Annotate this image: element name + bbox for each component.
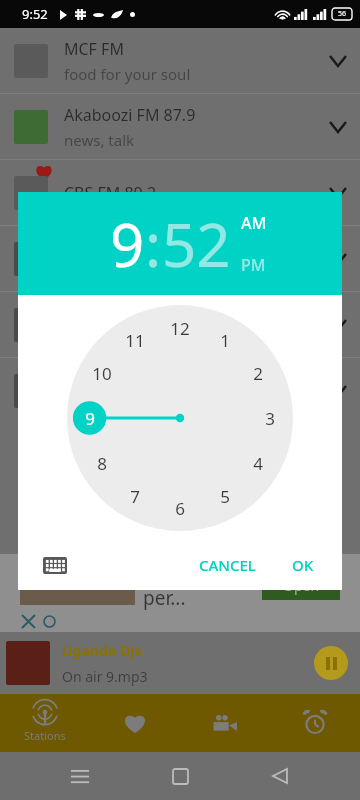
staticText: 3 [265,407,275,430]
staticText: Stations [24,728,66,743]
staticText: On air 9.mp3 [62,667,148,686]
staticText: 5 [220,485,230,508]
button[interactable]: Favorites [90,694,180,752]
button[interactable]: Home [160,756,200,796]
button[interactable]: 8 [87,448,117,478]
staticText: 9 [110,203,145,285]
button[interactable]: Back [260,756,300,796]
button[interactable]: 4 [243,448,273,478]
staticText: 7 [130,485,140,508]
staticText: CANCEL [199,555,256,575]
staticText: Akaboozi FM 87.9 [64,104,196,126]
button[interactable]: 11 [120,325,150,355]
button[interactable] [0,292,360,357]
button[interactable] [0,226,360,291]
staticText: 8 [97,452,107,475]
staticText: 9 [85,407,95,430]
button[interactable]: Recents [60,756,100,796]
button[interactable]: 1 [210,325,240,355]
button[interactable]: Switch to text input [40,553,70,577]
staticText: per... [143,585,186,611]
button[interactable]: CANCEL [189,547,266,583]
button[interactable]: 2 [243,358,273,388]
button[interactable]: 9 [75,403,105,433]
button[interactable]: Video [180,694,270,752]
staticText: food for your soul [64,64,191,84]
staticText: Earn $6.6 [143,559,227,585]
staticText: 12 [170,317,190,340]
button[interactable]: 10 [87,358,117,388]
staticText: 6 [175,497,185,520]
button[interactable]: MCF FM [0,28,360,93]
button[interactable]: 12 [165,313,195,343]
button[interactable]: Stations [0,694,90,752]
button[interactable]: Alarm [270,694,360,752]
button[interactable] [0,358,360,423]
staticText: PM [241,254,266,276]
button[interactable]: 9 [110,203,145,285]
staticText: 1 [220,329,230,352]
button[interactable]: Pause [314,646,348,680]
staticText: Uganda DJs [62,641,142,660]
staticText: : [145,203,162,285]
button[interactable]: 6 [165,493,195,523]
button[interactable]: Akaboozi FM 87.9 [0,94,360,159]
staticText: OK [292,555,314,575]
staticText: Open [283,576,320,595]
staticText: news, talk [64,130,135,150]
button[interactable]: CBS FM 89.2 [0,160,360,225]
staticText: 9:52 [22,5,48,23]
button[interactable]: OK [282,547,324,583]
button[interactable]: AM [241,212,267,234]
button[interactable]: Uganda DJs [0,632,360,694]
button[interactable]: PM [241,254,266,276]
staticText: 52 [162,203,231,285]
button[interactable]: 5 [210,481,240,511]
button[interactable]: 52 [162,203,231,285]
staticText: MCF FM [64,38,124,60]
staticText: 11 [125,329,145,352]
staticText: 10 [92,362,112,385]
staticText: CBS FM 89.2 [64,182,157,204]
button[interactable]: Earn $6.6 [0,554,360,632]
button[interactable]: 7 [120,481,150,511]
staticText: 2 [253,362,263,385]
button[interactable]: 3 [255,403,285,433]
staticText: AM [241,212,267,234]
staticText: 56 [338,9,347,19]
staticText: 4 [253,452,263,475]
